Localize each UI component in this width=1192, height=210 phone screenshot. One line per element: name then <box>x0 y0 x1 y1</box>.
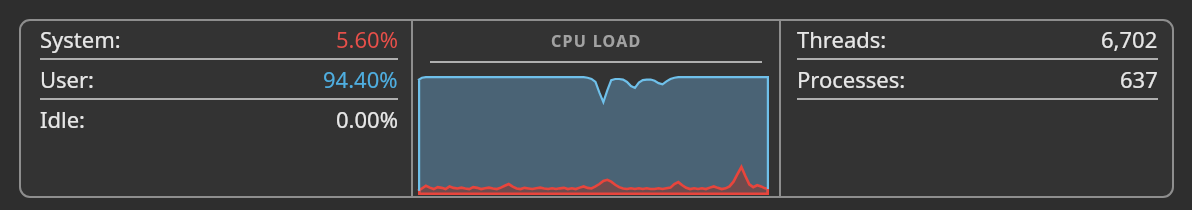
button[interactable]: User: <box>40 60 398 100</box>
button[interactable]: Threads: <box>797 20 1158 60</box>
button[interactable]: System: <box>40 20 398 60</box>
button[interactable]: Processes: <box>797 60 1158 100</box>
staticText: Processes: <box>797 64 906 94</box>
button[interactable]: System: <box>19 19 411 198</box>
staticText: 6,702 <box>1101 24 1158 54</box>
staticText: 637 <box>1120 64 1158 94</box>
staticText: System: <box>40 24 121 54</box>
staticText: Threads: <box>797 24 887 54</box>
staticText: CPU LOAD <box>551 30 642 52</box>
button[interactable]: CPU load graph <box>413 19 779 198</box>
staticText: 94.40% <box>323 64 398 94</box>
staticText: Idle: <box>40 104 85 134</box>
staticText: 5.60% <box>336 24 398 54</box>
staticText: User: <box>40 64 95 94</box>
button[interactable]: Idle: <box>40 100 398 138</box>
button[interactable]: Threads: <box>781 19 1174 198</box>
staticText: 0.00% <box>336 104 398 134</box>
